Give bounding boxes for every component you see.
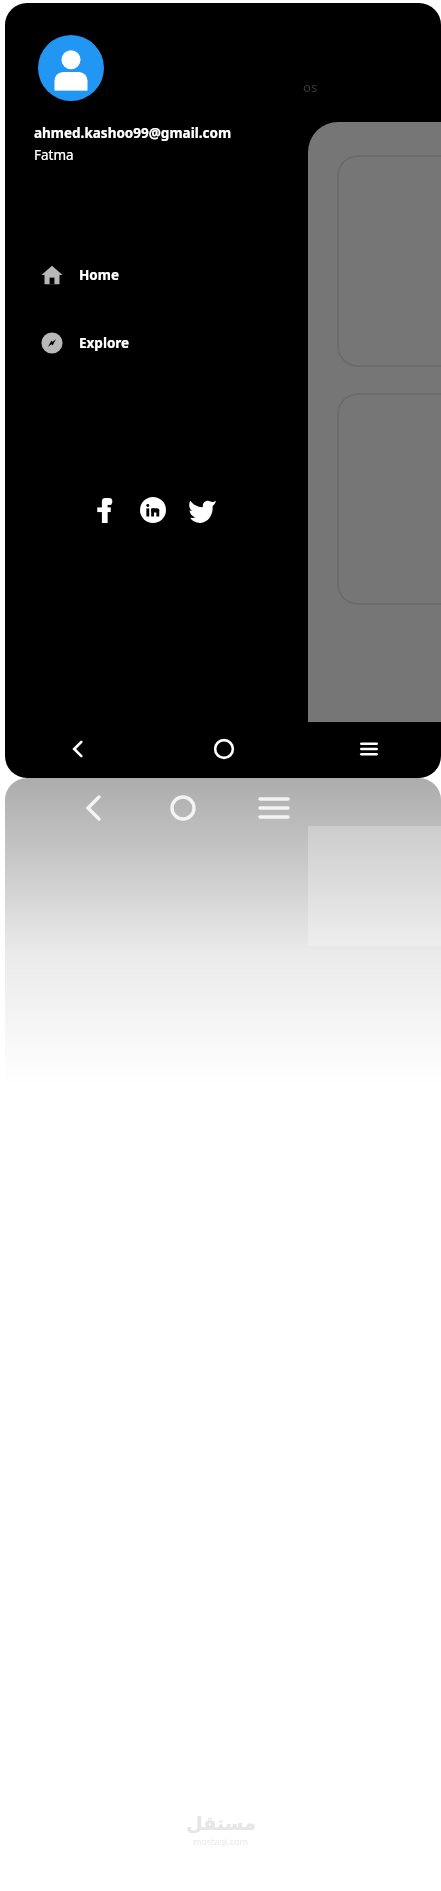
staticText: مستقل — [186, 1812, 256, 1834]
button[interactable]: Profile avatar — [38, 35, 104, 101]
button[interactable]: Home — [5, 255, 441, 295]
button[interactable]: Recent apps — [296, 720, 441, 778]
staticText: mostaqi.com — [193, 1835, 248, 1847]
staticText: Explore — [79, 334, 130, 352]
button[interactable]: Facebook — [81, 487, 127, 533]
staticText: Home — [79, 266, 119, 284]
button[interactable]: Twitter — [179, 487, 225, 533]
staticText: ahmed.kashoo99@gmail.com — [34, 124, 232, 142]
button[interactable]: LinkedIn — [130, 487, 176, 533]
button[interactable]: Back — [5, 720, 151, 778]
staticText: Fatma — [34, 146, 74, 164]
button[interactable]: Explore — [5, 323, 441, 363]
staticText: os — [303, 78, 318, 96]
button[interactable]: Home — [151, 720, 296, 778]
